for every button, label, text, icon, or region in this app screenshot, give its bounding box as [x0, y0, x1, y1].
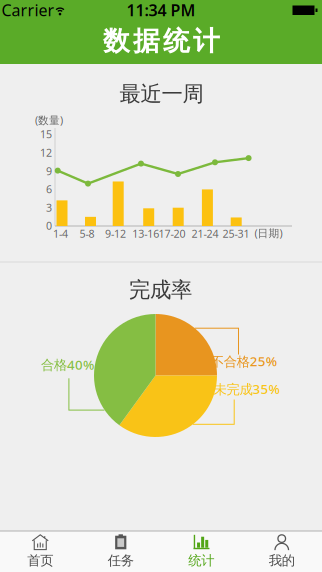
staticText: 数据统计	[103, 25, 220, 57]
staticText: (数量)	[35, 113, 63, 127]
staticText: 25-31	[223, 226, 250, 241]
staticText: 13-16	[132, 226, 159, 241]
staticText: 12	[40, 145, 52, 160]
staticText: Carrier	[1, 0, 54, 21]
staticText: 6	[46, 182, 52, 196]
staticText: 21-24	[191, 226, 218, 241]
staticText: 我的	[269, 552, 295, 569]
staticText: 9	[46, 164, 52, 178]
staticText: 不合格25%	[211, 352, 277, 370]
staticText: 0	[46, 218, 52, 233]
staticText: 首页	[27, 552, 53, 569]
staticText: 未完成35%	[213, 380, 279, 398]
staticText: 15	[40, 127, 52, 141]
staticText: 11:34 PM	[126, 0, 195, 21]
staticText: 完成率	[129, 277, 192, 303]
staticText: 统计	[188, 552, 214, 569]
staticText: 17-20	[158, 226, 185, 241]
staticText: 9-12	[105, 226, 126, 241]
button[interactable]: 统计	[161, 531, 241, 572]
staticText: 最近一周	[119, 81, 203, 107]
button[interactable]: 任务	[81, 531, 161, 572]
staticText: 任务	[108, 552, 134, 569]
staticText: 3	[46, 200, 52, 215]
staticText: 合格40%	[41, 356, 94, 373]
staticText: 5-8	[79, 226, 94, 241]
button[interactable]: 我的	[242, 531, 322, 572]
staticText: (日期)	[254, 226, 282, 240]
staticText: 1-4	[53, 226, 68, 241]
button[interactable]: 首页	[0, 531, 80, 572]
